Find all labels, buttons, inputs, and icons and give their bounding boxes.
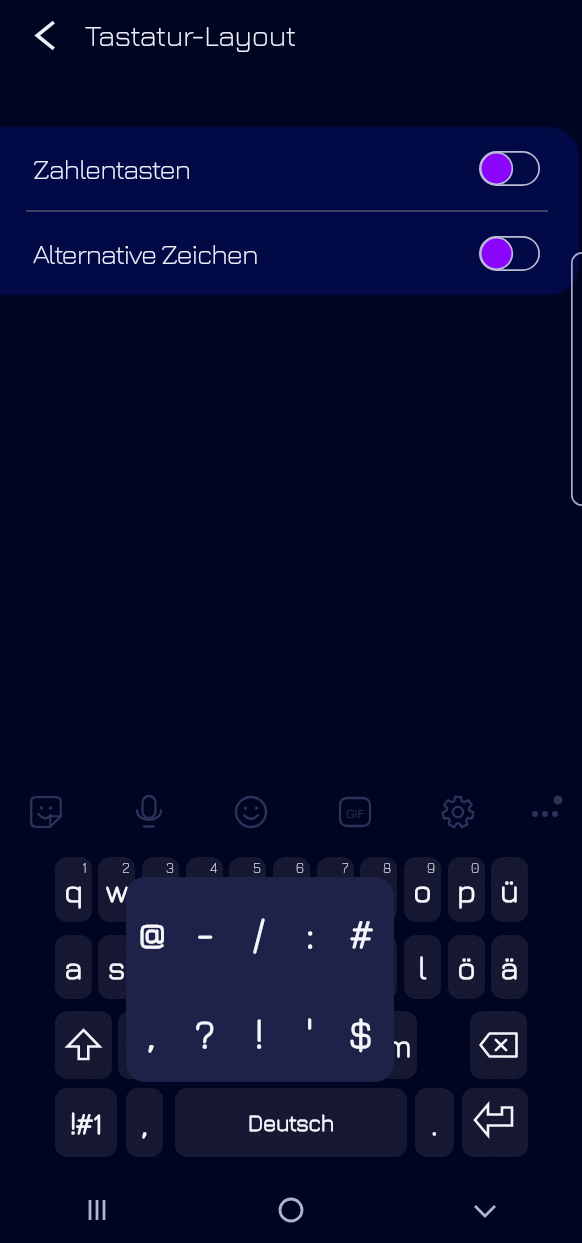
staticText: n — [345, 1026, 364, 1064]
staticText: a — [64, 948, 83, 986]
button[interactable]: more — [519, 786, 571, 838]
button[interactable]: a — [55, 935, 92, 999]
staticText: @ — [138, 909, 167, 956]
button[interactable]: . — [415, 1088, 454, 1157]
staticText: d — [151, 948, 170, 986]
button[interactable]: , — [126, 1088, 163, 1157]
staticText: 9 — [427, 859, 436, 876]
button[interactable]: h — [273, 935, 310, 999]
button[interactable]: settings — [432, 786, 484, 838]
button[interactable]: ö — [448, 935, 485, 999]
button[interactable]: f — [186, 935, 223, 999]
button[interactable]: o — [404, 857, 441, 922]
button[interactable]: e — [142, 857, 179, 922]
staticText: 2 — [122, 859, 130, 876]
staticText: / — [252, 909, 266, 956]
button[interactable]: i — [360, 857, 397, 922]
staticText: !#1 — [70, 1105, 102, 1140]
staticText: ä — [500, 948, 519, 986]
button[interactable]: emoji — [225, 786, 277, 838]
button[interactable]: !#1 — [55, 1088, 117, 1157]
button[interactable]: x — [162, 1011, 199, 1079]
staticText: m — [385, 1026, 412, 1064]
staticText: # — [350, 909, 373, 956]
button[interactable]: ä — [491, 935, 528, 999]
staticText: 4 — [210, 859, 218, 876]
staticText: ü — [500, 871, 519, 909]
button[interactable]: n — [336, 1011, 373, 1079]
staticText: e — [151, 871, 170, 909]
button[interactable]: k — [360, 935, 397, 999]
staticText: : — [306, 909, 315, 956]
staticText: 7 — [342, 859, 349, 876]
button[interactable]: Alternative Zeichen — [0, 212, 582, 295]
button[interactable] — [126, 877, 394, 1082]
button[interactable]: p — [448, 857, 485, 922]
button[interactable]: Back — [14, 8, 76, 62]
staticText: ö — [457, 948, 476, 986]
staticText: 0 — [471, 859, 480, 876]
staticText: b — [302, 1026, 321, 1064]
button[interactable]: m — [380, 1011, 417, 1079]
button[interactable]: sticker — [20, 786, 72, 838]
staticText: o — [413, 871, 432, 909]
staticText: Zahlentasten — [33, 152, 479, 185]
button[interactable]: c — [205, 1011, 242, 1079]
staticText: , — [142, 1104, 148, 1142]
staticText: v — [260, 1026, 276, 1064]
staticText: u — [326, 871, 345, 909]
button[interactable]: Recents — [0, 1177, 194, 1243]
staticText: s — [108, 948, 125, 986]
button[interactable]: r — [186, 857, 223, 922]
staticText: ! — [255, 1009, 264, 1056]
staticText: 8 — [383, 859, 392, 876]
staticText: w — [106, 871, 128, 909]
button[interactable]: Home — [194, 1177, 388, 1243]
staticText: 6 — [296, 859, 305, 876]
button[interactable]: bksp — [470, 1011, 527, 1079]
staticText: Deutsch — [248, 1109, 334, 1136]
button[interactable]: q — [55, 857, 92, 922]
button[interactable]: g — [229, 935, 266, 999]
button[interactable]: w — [98, 857, 135, 922]
button[interactable]: v — [249, 1011, 286, 1079]
button[interactable]: shift — [55, 1011, 112, 1079]
button[interactable]: Hide keyboard — [388, 1177, 582, 1243]
staticText: ? — [196, 1009, 215, 1056]
button[interactable]: gif — [329, 786, 381, 838]
staticText: 3 — [166, 859, 174, 876]
button[interactable]: b — [293, 1011, 330, 1079]
staticText: z — [284, 871, 300, 909]
button[interactable]: j — [317, 935, 354, 999]
button[interactable]: ü — [491, 857, 528, 922]
staticText: GIF — [346, 805, 364, 820]
staticText: r — [199, 871, 211, 909]
staticText: $ — [348, 1009, 374, 1056]
staticText: . — [431, 1104, 438, 1142]
staticText: 1 — [82, 859, 87, 876]
button[interactable]: z — [273, 857, 310, 922]
button[interactable]: t — [229, 857, 266, 922]
staticText: i — [375, 871, 382, 909]
staticText: p — [457, 871, 476, 909]
button[interactable]: Deutsch — [175, 1088, 407, 1157]
button[interactable]: Zahlentasten — [0, 127, 582, 210]
button[interactable]: enter — [462, 1088, 528, 1157]
button[interactable]: mic — [123, 786, 175, 838]
button[interactable]: u — [317, 857, 354, 922]
staticText: q — [64, 871, 83, 909]
button[interactable]: s — [98, 935, 135, 999]
staticText: , — [148, 1009, 156, 1056]
staticText: 5 — [253, 859, 261, 876]
staticText: Alternative Zeichen — [33, 237, 479, 270]
button[interactable]: l — [404, 935, 441, 999]
button[interactable]: y — [118, 1011, 155, 1079]
button[interactable]: d — [142, 935, 179, 999]
